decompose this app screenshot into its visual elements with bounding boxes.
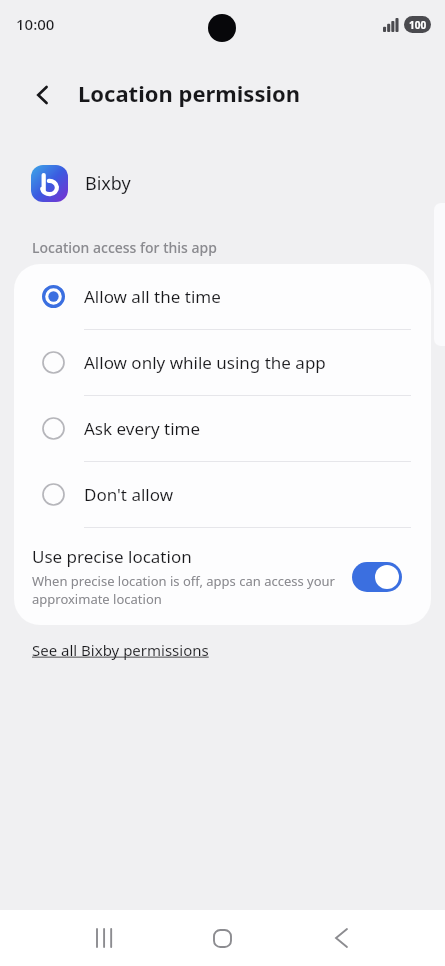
button[interactable]: Back: [311, 910, 371, 966]
button[interactable]: Ask every time: [14, 396, 431, 461]
staticText: Bixby: [85, 171, 131, 196]
button[interactable]: Allow only while using the app: [14, 330, 431, 395]
staticText: 100: [409, 18, 427, 32]
staticText: 10:00: [16, 14, 55, 34]
staticText: Location access for this app: [32, 238, 217, 257]
button[interactable]: Don't allow: [14, 462, 431, 527]
button[interactable]: Use precise location toggle: [352, 562, 402, 592]
button[interactable]: Back: [20, 72, 66, 118]
staticText: Use precise location: [32, 545, 192, 568]
staticText: Allow all the time: [84, 285, 221, 308]
button[interactable]: Home: [192, 910, 252, 966]
staticText: When precise location is off, apps can a…: [32, 572, 362, 608]
staticText: Location permission: [78, 78, 301, 108]
staticText: Allow only while using the app: [84, 351, 326, 374]
button[interactable]: Use precise location: [14, 528, 431, 625]
button[interactable]: Bixby: [0, 158, 445, 208]
button[interactable]: Recents: [74, 910, 134, 966]
staticText: See all Bixby permissions: [32, 640, 209, 660]
staticText: Don't allow: [84, 483, 174, 506]
staticText: Ask every time: [84, 417, 201, 440]
button[interactable]: See all Bixby permissions: [32, 640, 209, 660]
button[interactable]: Allow all the time: [14, 264, 431, 329]
